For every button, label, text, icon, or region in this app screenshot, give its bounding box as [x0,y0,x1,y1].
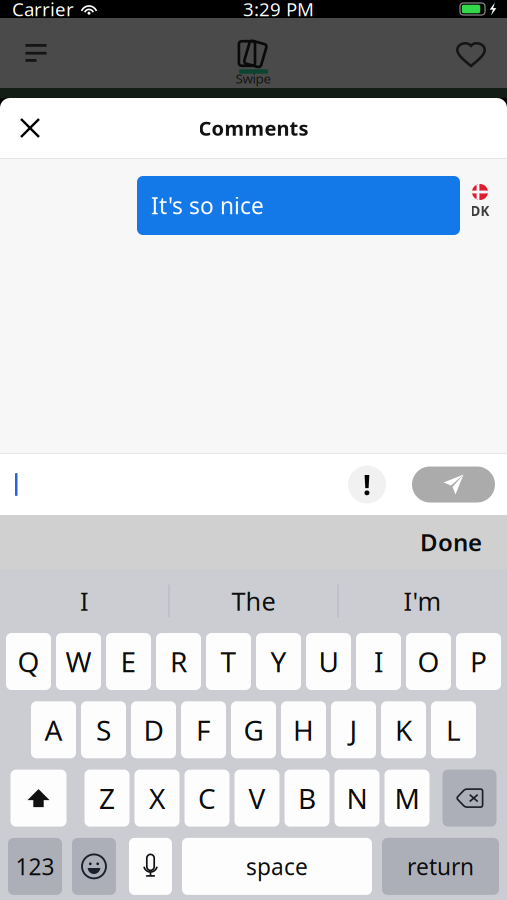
button[interactable]: E [106,633,151,690]
staticText: C [198,779,216,817]
button[interactable]: R [156,633,201,690]
staticText: space [246,851,308,881]
button[interactable]: Q [6,633,51,690]
staticText: Y [270,643,286,680]
button[interactable]: V [234,770,279,827]
staticText: U [318,643,338,680]
staticText: 3:29 PM [243,0,314,21]
button[interactable]: Send [412,466,495,502]
button[interactable]: I [0,569,168,633]
staticText: It's so nice [151,190,264,220]
staticText: Comments [198,115,308,141]
button[interactable] [10,770,66,827]
button[interactable]: M [384,770,429,827]
staticText: R [170,643,187,680]
staticText: I'm [403,584,441,618]
button[interactable]: Y [256,633,301,690]
staticText: Swipe [235,69,271,87]
button[interactable]: I [356,633,401,690]
button[interactable]: Menu [14,31,58,75]
button[interactable]: C [184,770,229,827]
staticText: 123 [15,851,54,881]
staticText: Carrier [12,0,74,21]
staticText: M [394,779,419,817]
button[interactable]: Done [406,518,496,566]
button[interactable]: J [331,701,376,758]
button[interactable]: Close [8,106,52,150]
staticText: N [346,779,367,817]
button[interactable]: space [182,838,372,895]
button[interactable]: P [456,633,501,690]
staticText: X [149,779,165,817]
button[interactable]: B [284,770,329,827]
button[interactable]: D [131,701,176,758]
staticText: F [196,711,211,748]
staticText: L [446,711,461,748]
button[interactable]: K [381,701,426,758]
button[interactable]: F [181,701,226,758]
button[interactable]: X [134,770,179,827]
staticText: DK [470,202,489,220]
button[interactable]: G [231,701,276,758]
button[interactable]: The [169,569,337,633]
staticText: Q [17,643,39,680]
staticText: V [248,779,265,817]
button[interactable]: N [334,770,379,827]
staticText: E [120,643,136,680]
button[interactable]: S [81,701,126,758]
staticText: G [243,711,263,748]
button[interactable] [72,838,116,895]
button[interactable]: 123 [8,838,62,895]
button[interactable]: H [281,701,326,758]
button[interactable]: return [382,838,499,895]
staticText: I [80,584,89,618]
staticText: Done [420,526,482,558]
staticText: K [395,711,412,748]
button[interactable] [442,770,496,827]
staticText: H [293,711,314,748]
staticText: B [298,779,316,817]
staticText: return [407,851,474,881]
button[interactable]: W [56,633,101,690]
button[interactable]: L [431,701,476,758]
button[interactable]: Warning [348,465,386,503]
button[interactable]: I'm [338,569,506,633]
button[interactable]: Favorites [449,31,493,75]
staticText: J [349,711,357,748]
staticText: Z [99,779,115,817]
staticText: D [143,711,163,748]
staticText: ! [363,466,371,503]
staticText: I [374,643,383,680]
button[interactable]: T [206,633,251,690]
button[interactable]: A [31,701,76,758]
staticText: A [44,711,62,748]
staticText: T [220,643,236,680]
staticText: The [231,584,275,618]
staticText: O [417,643,439,680]
staticText: W [65,643,91,680]
button[interactable] [129,838,172,895]
button[interactable]: U [306,633,351,690]
staticText: S [96,711,111,748]
button[interactable]: O [406,633,451,690]
staticText: P [470,643,487,680]
button[interactable]: Z [84,770,129,827]
